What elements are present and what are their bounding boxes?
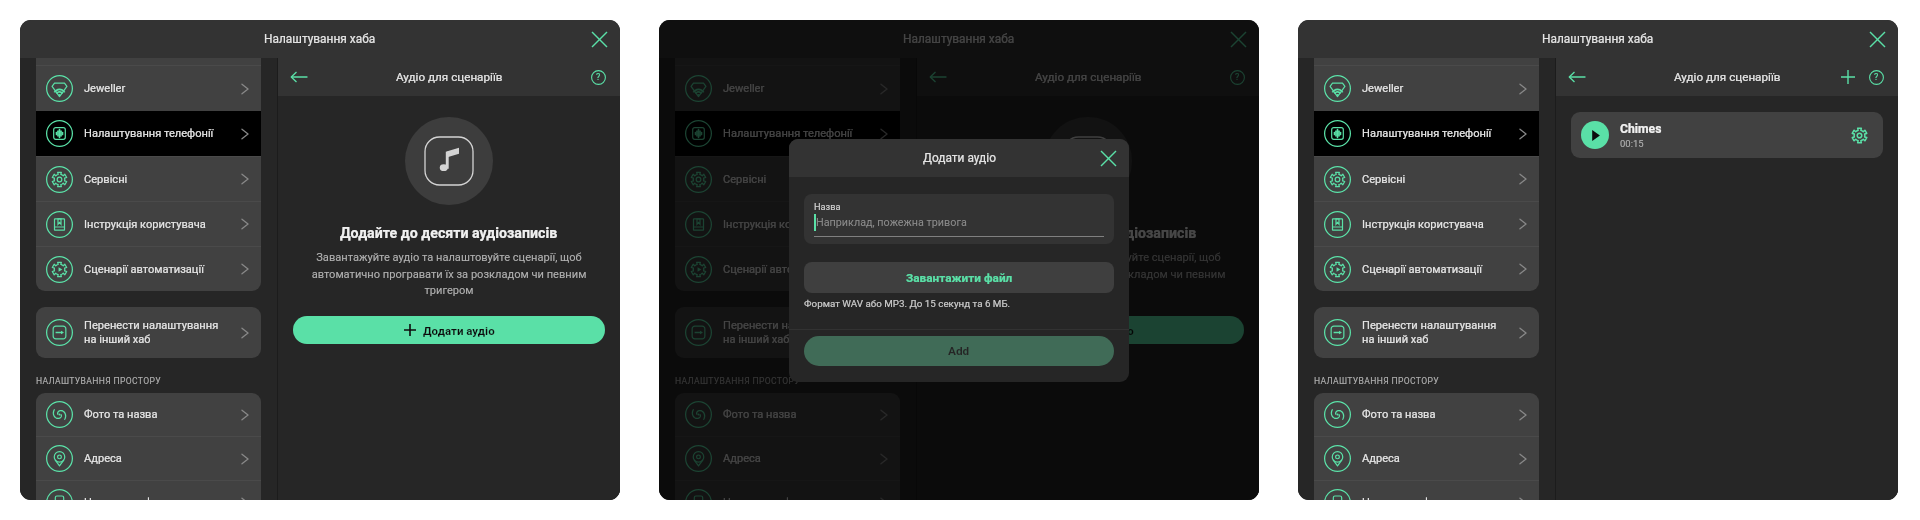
staticText: Інструкція користувача [84,218,206,231]
staticText: Назва [814,201,841,212]
staticText: Сценарії автоматизації [84,263,204,276]
button[interactable]: Інструкція користувача [1314,202,1539,246]
staticText: Інструкція користувача [1362,218,1484,231]
staticText: Сценарії автоматизації [723,263,843,276]
button[interactable]: Фото та назва [1314,393,1539,436]
staticText: Сервісні [1362,173,1406,186]
staticText: Додайте до десяти аудіозаписів [979,225,1197,242]
staticText: Завантажити файл [906,271,1013,285]
staticText: Сервісні [723,173,767,186]
button[interactable]: Add [804,336,1114,366]
button[interactable]: Адреса [1314,437,1539,480]
button[interactable]: Завантажити файл [804,262,1114,293]
button[interactable]: Сервісні [36,157,261,201]
staticText: Номер телефону [723,496,810,500]
button[interactable]: Фото та назва [675,393,900,436]
button[interactable]: Close [1225,26,1251,52]
button[interactable]: Номер телефону [675,481,900,500]
staticText: НАЛАШТУВАННЯ ПРОСТОРУ [1314,376,1440,386]
button[interactable]: Налаштування телефонії [36,111,261,156]
staticText: НАЛАШТУВАННЯ ПРОСТОРУ [36,376,162,386]
button[interactable]: Сервісні [675,157,900,201]
button[interactable]: Номер телефону [1314,481,1539,500]
button[interactable]: Help [1863,64,1889,90]
staticText: Перенести налаштування на інший хаб [84,319,219,346]
staticText: Номер телефону [84,496,171,500]
button[interactable]: Settings [1847,123,1871,147]
staticText: Налаштування хаба [903,32,1015,46]
staticText: Завантажуйте аудіо та налаштовуйте сцена… [938,251,1238,296]
button[interactable]: Налаштування телефонії [675,111,900,156]
staticText: Наприклад, пожежна тривога [816,216,967,229]
staticText: Фото та назва [84,408,158,421]
button[interactable]: Jeweller [36,66,261,111]
staticText: Завантажуйте аудіо та налаштовуйте сцена… [299,251,599,296]
button[interactable]: Close dialog [1095,145,1121,171]
staticText: Інструкція користувача [723,218,845,231]
button[interactable]: Інструкція користувача [675,202,900,246]
button[interactable]: Chimes [1571,112,1883,158]
button[interactable]: Back [1564,64,1590,90]
staticText: Фото та назва [1362,408,1436,421]
staticText: ? [1235,72,1240,83]
staticText: Аудіо для сценаріїв [1674,70,1781,84]
staticText: Налаштування телефонії [1362,127,1492,140]
staticText: Додайте до десяти аудіозаписів [340,225,558,242]
button[interactable]: Фото та назва [36,393,261,436]
staticText: Chimes [1620,122,1662,136]
staticText: Налаштування хаба [264,32,376,46]
button[interactable]: Close [1864,26,1890,52]
staticText: Jeweller [723,82,765,95]
button[interactable]: Перенести налаштування на інший хаб [675,307,900,358]
button[interactable]: Адреса [36,437,261,480]
button[interactable]: Додати аудіо [932,316,1244,344]
staticText: Перенести налаштування на інший хаб [723,319,858,346]
staticText: Адреса [1362,452,1400,465]
staticText: Додати аудіо [923,151,996,165]
staticText: Налаштування телефонії [84,127,214,140]
staticText: ? [1874,72,1879,83]
button[interactable]: Сценарії автоматизації [675,247,900,291]
staticText: Jeweller [1362,82,1404,95]
button[interactable]: Інструкція користувача [36,202,261,246]
button[interactable]: Номер телефону [36,481,261,500]
button[interactable]: Сценарії автоматизації [36,247,261,291]
button[interactable]: Add audio [1835,64,1861,90]
staticText: Додати аудіо [423,324,495,337]
staticText: Сервісні [84,173,128,186]
staticText: Аудіо для сценаріїв [1035,70,1142,84]
staticText: НАЛАШТУВАННЯ ПРОСТОРУ [675,376,801,386]
staticText: Сценарії автоматизації [1362,263,1482,276]
staticText: Перенести налаштування на інший хаб [1362,319,1497,346]
staticText: Фото та назва [723,408,797,421]
staticText: Налаштування хаба [1542,32,1654,46]
staticText: Аудіо для сценаріїв [396,70,503,84]
staticText: Формат WAV або MP3. До 15 секунд та 6 МБ… [804,298,1011,309]
button[interactable]: Перенести налаштування на інший хаб [1314,307,1539,358]
button[interactable]: Налаштування телефонії [1314,111,1539,156]
button[interactable]: Додати аудіо [293,316,605,344]
button[interactable]: Help [1224,64,1250,90]
button[interactable]: Адреса [675,437,900,480]
staticText: Jeweller [84,82,126,95]
staticText: Адреса [723,452,761,465]
staticText: Адреса [84,452,122,465]
button[interactable]: Jeweller [675,66,900,111]
button[interactable]: Перенести налаштування на інший хаб [36,307,261,358]
staticText: Додати аудіо [1062,324,1134,337]
staticText: 00:15 [1620,138,1644,149]
staticText: Номер телефону [1362,496,1449,500]
button[interactable]: Jeweller [1314,66,1539,111]
button[interactable]: Back [286,64,312,90]
staticText: Add [948,344,970,358]
button[interactable]: Сервісні [1314,157,1539,201]
button[interactable]: Close [586,26,612,52]
button[interactable]: Back [925,64,951,90]
staticText: Налаштування телефонії [723,127,853,140]
button[interactable]: Help [585,64,611,90]
staticText: ? [596,72,601,83]
button[interactable]: Сценарії автоматизації [1314,247,1539,291]
